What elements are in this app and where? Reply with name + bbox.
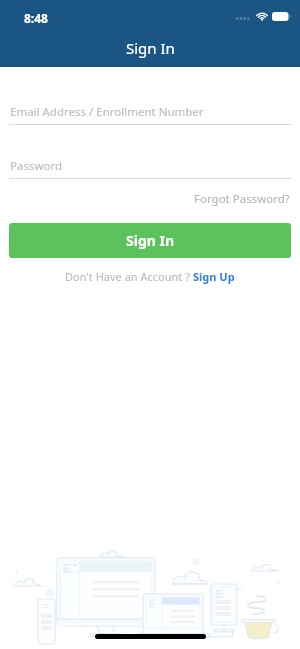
staticText: Email Address / Enrollment Number (10, 104, 204, 120)
button[interactable]: Email Address / Enrollment Number (0, 100, 300, 124)
staticText: Forgot Password? (194, 191, 290, 207)
other: Devices illustration (0, 544, 300, 649)
button[interactable]: Sign Up (193, 269, 235, 284)
button[interactable]: Forgot Password? (184, 187, 300, 211)
staticText: Password (10, 158, 63, 174)
staticText: Sign In (126, 231, 175, 250)
staticText: Sign Up (193, 269, 235, 284)
staticText: Sign In (126, 38, 175, 58)
button[interactable]: Password (0, 154, 300, 178)
staticText: Don't Have an Account ? (65, 269, 193, 284)
button[interactable]: Sign In (9, 223, 291, 258)
staticText: 8:48 (24, 10, 48, 26)
